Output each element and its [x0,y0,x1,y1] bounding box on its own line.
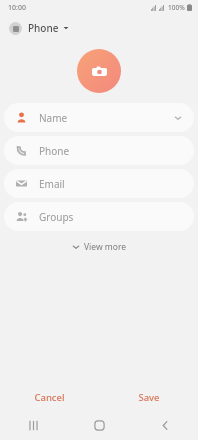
staticText: Name [39,111,68,125]
button[interactable]: Name [4,103,194,132]
staticText: Cancel [34,391,65,404]
staticText: View more [84,241,127,253]
staticText: Email [39,177,65,191]
staticText: 100% [168,3,185,12]
button[interactable]: View more [64,237,135,257]
button[interactable]: Back [132,410,198,440]
button[interactable]: Phone [4,136,194,165]
button[interactable]: Phone [0,15,198,41]
button[interactable]: Add contact photo [77,49,121,93]
staticText: Phone [28,21,59,35]
button[interactable]: Email [4,169,194,198]
button[interactable]: Cancel [0,384,99,410]
button[interactable]: Groups [4,202,194,231]
staticText: Groups [39,210,74,224]
staticText: Save [138,391,160,404]
button[interactable]: Save [99,384,198,410]
staticText: Phone [39,144,70,158]
button[interactable]: Home [66,410,132,440]
button[interactable]: Recents [0,410,66,440]
staticText: 10:00 [8,3,26,13]
